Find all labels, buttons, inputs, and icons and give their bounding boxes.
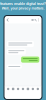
staticText: features enable digital trust? bbox=[0, 2, 46, 6]
button[interactable]: Voice call bbox=[34, 18, 37, 21]
button[interactable]: Tool 7 bbox=[35, 88, 40, 90]
button[interactable]: More options bbox=[37, 18, 39, 21]
button[interactable]: Back bbox=[6, 18, 9, 22]
staticText: Well, your privacy matters. bbox=[1, 6, 44, 10]
button[interactable]: Video call bbox=[31, 18, 34, 21]
button[interactable]: Tool 6 bbox=[30, 88, 35, 90]
button[interactable]: Tool 3 bbox=[16, 88, 20, 90]
button[interactable]: Tool 1 bbox=[6, 88, 11, 90]
button[interactable]: Tool 5 bbox=[25, 88, 30, 90]
button[interactable]: Tool 4 bbox=[20, 88, 25, 90]
button[interactable]: Tool 2 bbox=[11, 88, 15, 90]
